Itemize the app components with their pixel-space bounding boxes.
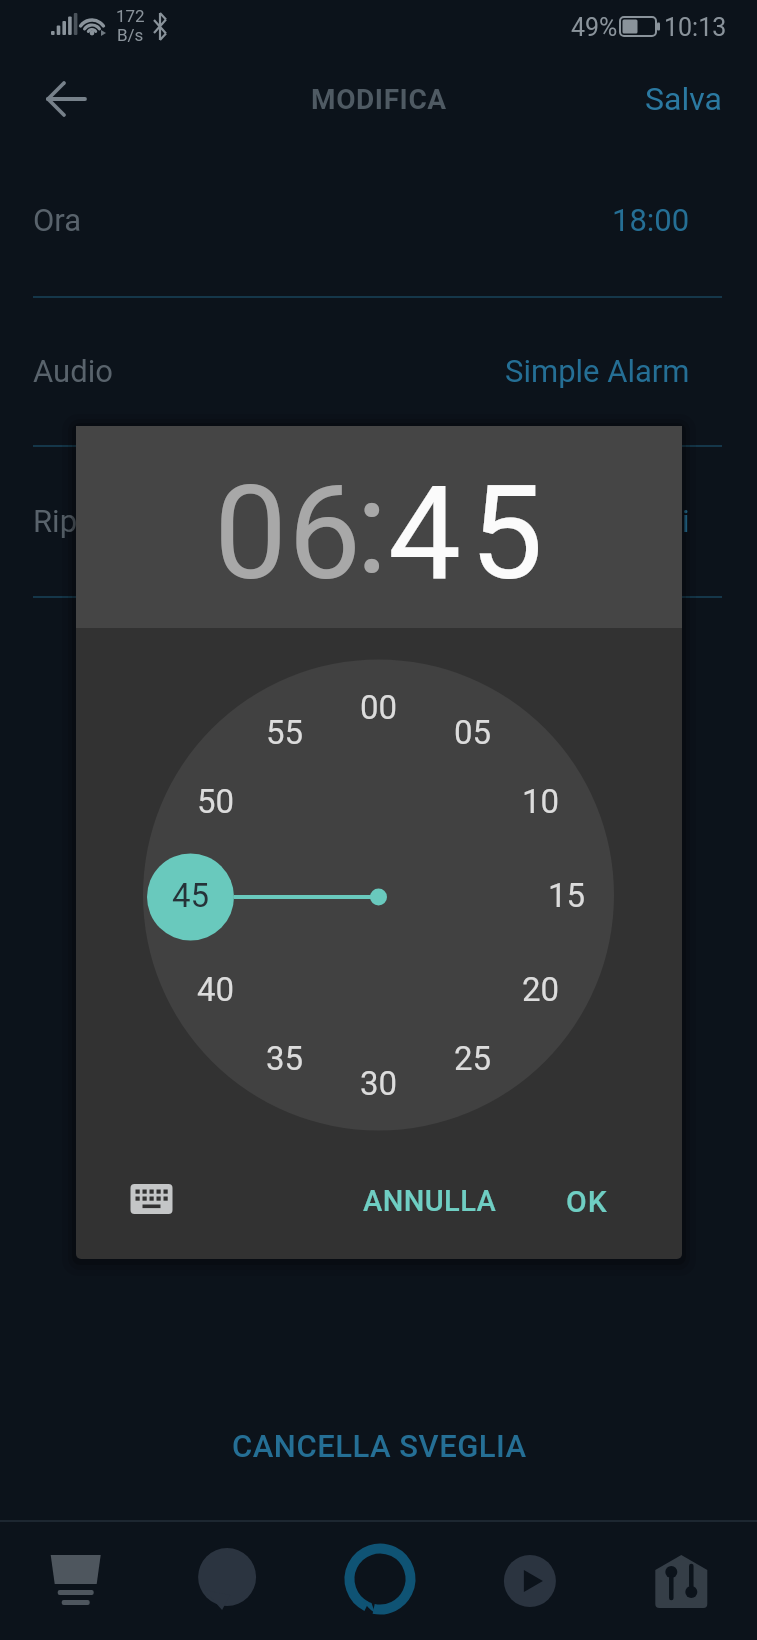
staticText: Audio	[33, 353, 113, 389]
staticText: 00	[360, 688, 398, 727]
staticText: 25	[454, 1039, 492, 1078]
staticText: Salva	[645, 80, 722, 118]
button[interactable]	[118, 1172, 184, 1230]
button[interactable]: ANNULLA	[363, 1184, 497, 1218]
button[interactable]	[0, 331, 757, 411]
staticText: 35	[266, 1039, 304, 1078]
button[interactable]: CANCELLA SVEGLIA	[232, 1428, 527, 1464]
staticText: ANNULLA	[363, 1184, 497, 1218]
staticText: 10:13	[664, 13, 727, 42]
staticText: 45	[172, 876, 210, 915]
button[interactable]: OK	[566, 1184, 608, 1219]
staticText: 06	[214, 457, 363, 609]
staticText: 45	[388, 457, 553, 609]
staticText: Mai	[638, 503, 690, 539]
staticText: 55	[266, 713, 304, 752]
button[interactable]	[36, 69, 96, 129]
button[interactable]	[303, 1522, 454, 1640]
staticText: 172	[116, 6, 145, 26]
staticText: :	[356, 451, 388, 603]
staticText: 40	[197, 970, 235, 1009]
staticText: 30	[360, 1064, 398, 1103]
button[interactable]	[151, 1522, 302, 1640]
staticText: Ora	[33, 202, 82, 238]
staticText: Simple Alarm	[505, 353, 690, 389]
staticText: 15	[548, 876, 586, 915]
staticText: 18:00	[612, 202, 690, 238]
button[interactable]	[0, 1522, 151, 1640]
staticText: Ripeti	[33, 503, 112, 539]
button[interactable]	[606, 1522, 757, 1640]
staticText: 20	[522, 970, 560, 1009]
staticText: MODIFICA	[311, 83, 447, 116]
staticText: 05	[454, 713, 492, 752]
button[interactable]	[454, 1522, 605, 1640]
staticText: 49%	[571, 13, 618, 42]
staticText: B/s	[117, 25, 144, 45]
staticText: 50	[197, 782, 235, 821]
staticText: CANCELLA SVEGLIA	[232, 1428, 527, 1464]
button[interactable]	[0, 180, 757, 260]
staticText: 10	[522, 782, 560, 821]
staticText: OK	[566, 1184, 608, 1219]
button[interactable]: Salva	[645, 80, 722, 118]
